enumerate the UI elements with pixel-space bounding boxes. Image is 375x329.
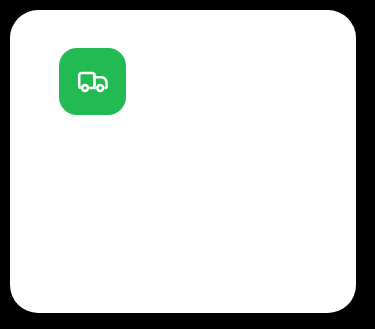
button[interactable]: Delivery <box>59 48 126 115</box>
